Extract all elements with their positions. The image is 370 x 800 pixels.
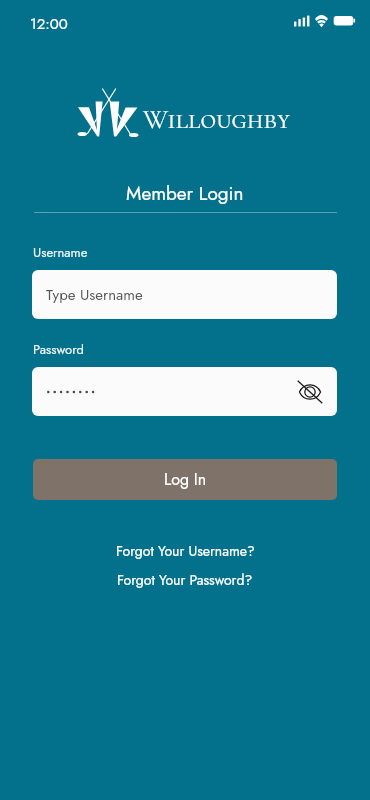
staticText: Type Username [46, 284, 143, 306]
button[interactable]: Show password [32, 367, 337, 416]
staticText: Password [33, 340, 85, 359]
button[interactable]: Forgot Your Password? [111, 568, 259, 592]
staticText: Forgot Your Username? [116, 541, 255, 561]
button[interactable]: Forgot Your Username? [110, 539, 261, 563]
staticText: Member Login [126, 180, 244, 207]
staticText: Willoughby [143, 103, 290, 136]
staticText: Username [33, 243, 88, 262]
button[interactable]: Type Username [32, 270, 337, 319]
staticText: Log In [164, 468, 207, 491]
button[interactable]: Show password [295, 377, 325, 407]
staticText: Forgot Your Password? [117, 570, 253, 590]
button[interactable]: Log In [33, 459, 337, 500]
staticText: 12:00 [30, 13, 68, 35]
